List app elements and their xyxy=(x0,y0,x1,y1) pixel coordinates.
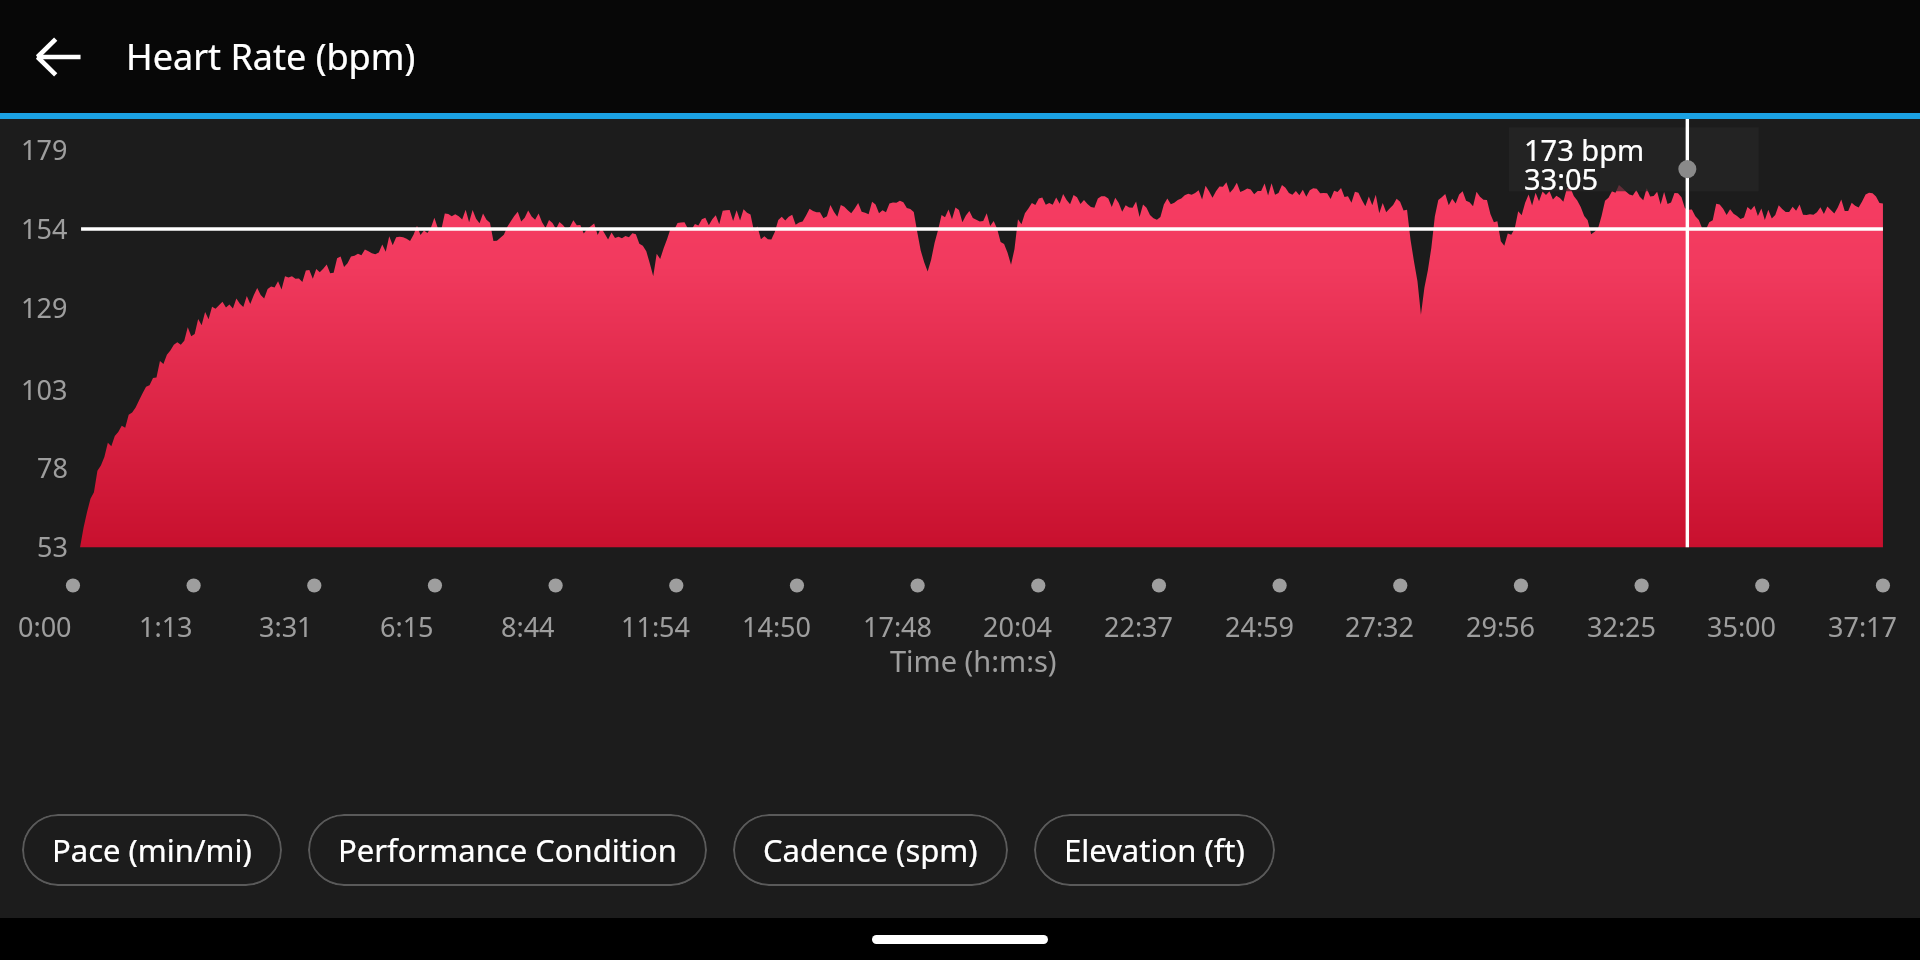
button[interactable]: Cadence (spm) xyxy=(733,814,1008,886)
staticText: 17:48 xyxy=(863,608,973,645)
staticText: 53 xyxy=(37,528,68,565)
staticText: 8:44 xyxy=(501,608,611,645)
button[interactable]: Back xyxy=(18,17,98,97)
staticText: 14:50 xyxy=(742,608,852,645)
staticText: 35:00 xyxy=(1707,608,1817,645)
staticText: 37:17 xyxy=(1828,608,1920,645)
staticText: 1:13 xyxy=(139,608,249,645)
staticText: Elevation (ft) xyxy=(1064,829,1245,871)
staticText: 103 xyxy=(21,371,68,408)
button[interactable]: Pace (min/mi) xyxy=(22,814,282,886)
staticText: 22:37 xyxy=(1104,608,1214,645)
staticText: 173 bpm xyxy=(1524,130,1645,169)
staticText: 11:54 xyxy=(621,608,731,645)
staticText: 24:59 xyxy=(1225,608,1335,645)
staticText: 6:15 xyxy=(380,608,490,645)
staticText: Time (h:m:s) xyxy=(890,641,1057,680)
staticText: 0:00 xyxy=(18,608,128,645)
button[interactable]: Elevation (ft) xyxy=(1034,814,1275,886)
staticText: 154 xyxy=(21,210,68,247)
staticText: 3:31 xyxy=(259,608,369,645)
staticText: Pace (min/mi) xyxy=(52,829,252,871)
staticText: 179 xyxy=(21,131,68,168)
staticText: 78 xyxy=(37,449,68,486)
button[interactable]: Performance Condition xyxy=(308,814,707,886)
staticText: 32:25 xyxy=(1587,608,1697,645)
staticText: 29:56 xyxy=(1466,608,1576,645)
staticText: 129 xyxy=(21,289,68,326)
staticText: 20:04 xyxy=(983,608,1093,645)
staticText: Cadence (spm) xyxy=(763,829,978,871)
staticText: Heart Rate (bpm) xyxy=(126,32,416,81)
staticText: 27:32 xyxy=(1345,608,1455,645)
staticText: 33:05 xyxy=(1524,159,1599,198)
staticText: Performance Condition xyxy=(338,829,677,871)
